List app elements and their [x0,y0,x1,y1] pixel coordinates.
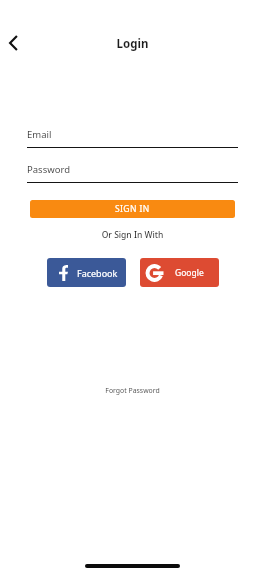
staticText: Facebook [77,267,118,279]
button[interactable]: Forgot Password [0,386,265,395]
staticText: Password [27,163,70,176]
staticText: Or Sign In With [0,229,265,241]
button[interactable]: Email [27,128,238,148]
button[interactable]: Back [0,28,28,57]
staticText: Email [27,128,52,141]
staticText: Login [0,36,265,52]
button[interactable]: Facebook [47,258,126,287]
staticText: Google [175,267,204,279]
button[interactable]: Password [27,163,238,183]
button[interactable]: Google [140,258,219,287]
staticText: SIGN IN [115,203,150,215]
button[interactable]: SIGN IN [30,200,235,218]
